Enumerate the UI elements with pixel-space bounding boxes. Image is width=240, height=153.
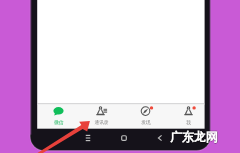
staticText: 我	[186, 119, 191, 125]
button[interactable]: 微信	[37, 103, 80, 128]
button[interactable]: Home	[113, 129, 135, 147]
staticText: 通讯录	[94, 119, 109, 125]
button[interactable]: 通讯录	[80, 103, 123, 128]
button[interactable]: 我	[167, 103, 210, 128]
button[interactable]: 发现	[124, 103, 167, 128]
button[interactable]: Back	[149, 129, 171, 147]
staticText: 广东龙网	[170, 129, 218, 144]
staticText: 广东龙网	[170, 131, 218, 146]
staticText: 发现	[141, 119, 151, 125]
staticText: 微信	[54, 119, 64, 125]
staticText: 广东龙网	[171, 130, 219, 145]
button[interactable]: Recent apps	[77, 129, 99, 147]
staticText: 广东龙网	[170, 130, 218, 145]
staticText: 广东龙网	[170, 130, 218, 145]
